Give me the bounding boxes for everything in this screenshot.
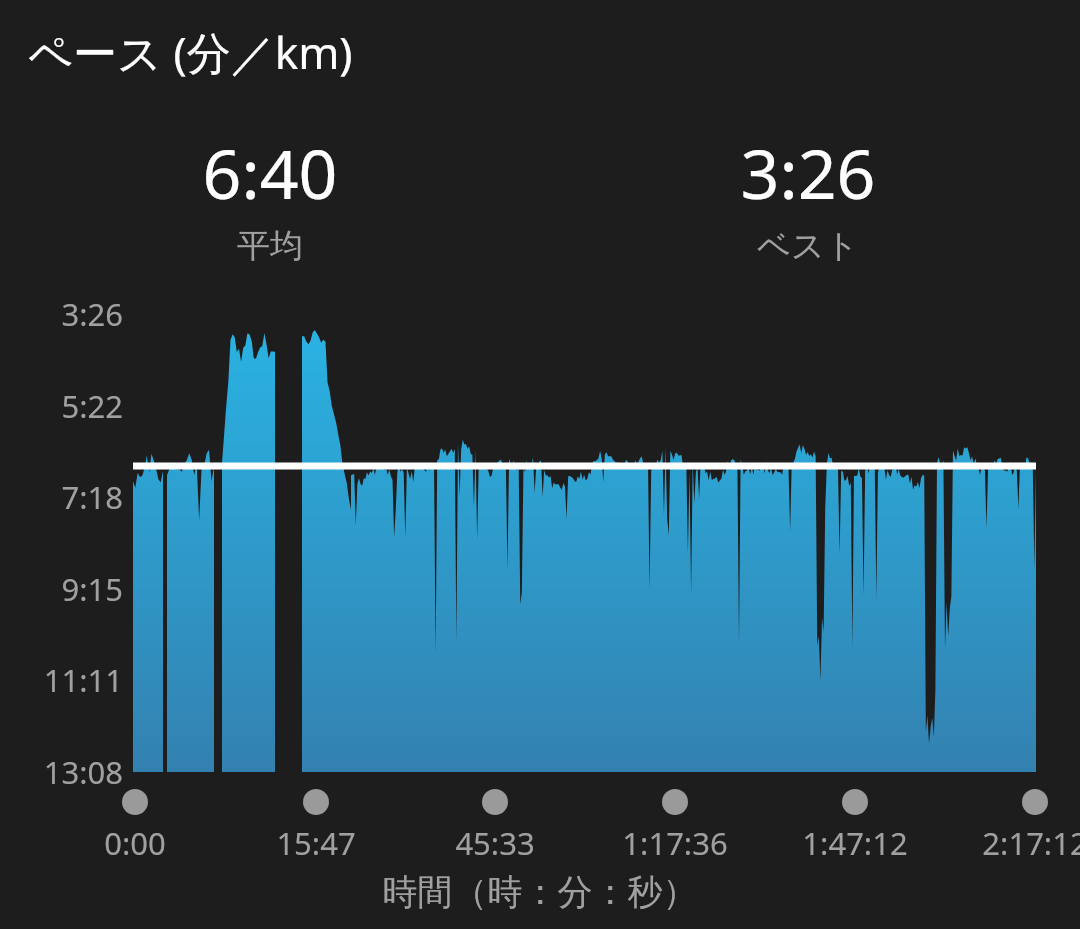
staticText: 13:08 xyxy=(0,751,123,793)
staticText: 9:15 xyxy=(0,568,123,610)
staticText: 3:26 xyxy=(0,293,123,335)
button[interactable]: ペースのグラフ xyxy=(0,0,1080,929)
staticText: 平均 xyxy=(130,225,410,267)
staticText: 時間（時：分：秒） xyxy=(0,870,1080,914)
staticText: 1:47:12 xyxy=(755,822,955,864)
staticText: 11:11 xyxy=(0,659,123,701)
staticText: 7:18 xyxy=(0,476,123,518)
staticText: ベスト xyxy=(668,225,948,267)
staticText: 3:26 xyxy=(668,126,948,219)
staticText: 1:17:36 xyxy=(575,822,775,864)
staticText: 45:33 xyxy=(395,822,595,864)
staticText: 5:22 xyxy=(0,385,123,427)
staticText: 6:40 xyxy=(130,126,410,219)
button[interactable]: 6:40 xyxy=(130,126,410,267)
staticText: ペース (分／km) xyxy=(28,22,353,82)
staticText: 2:17:12 xyxy=(935,822,1080,864)
button[interactable]: 3:26 xyxy=(668,126,948,267)
staticText: 15:47 xyxy=(216,822,416,864)
staticText: 0:00 xyxy=(35,822,235,864)
